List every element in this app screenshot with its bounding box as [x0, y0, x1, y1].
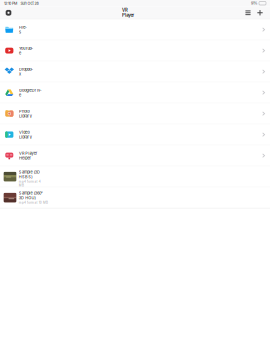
staticText: mp4 format 4 MB: [19, 180, 41, 187]
staticText: GoogleDrive: [19, 88, 41, 97]
staticText: VRPlayer Helper: [19, 151, 37, 160]
staticText: Dropbox: [19, 67, 33, 76]
button[interactable]: Photo Library: [0, 103, 270, 124]
staticText: YouTube: [19, 46, 33, 55]
staticText: 91%: [251, 1, 258, 5]
button[interactable]: Settings: [2, 7, 14, 19]
staticText: Video Library: [19, 130, 32, 139]
button[interactable]: Sample (360° 3D HOU): [0, 187, 270, 208]
button[interactable]: Files: [0, 19, 270, 40]
staticText: VR Player: [122, 8, 134, 18]
staticText: 12:10 PM: [4, 1, 17, 5]
button[interactable]: Layout options: [242, 7, 254, 19]
button[interactable]: Add: [254, 7, 266, 19]
staticText: Photo Library: [19, 109, 32, 118]
button[interactable]: Sample (3D HSBS): [0, 166, 270, 187]
button[interactable]: VRPlayer Helper: [0, 145, 270, 166]
staticText: Sun Oct 28: [20, 1, 38, 5]
button[interactable]: GoogleDrive: [0, 82, 270, 103]
staticText: Sample (3D HSBS): [19, 170, 40, 179]
button[interactable]: YouTube: [0, 40, 270, 61]
staticText: Sample (360° 3D HOU): [19, 191, 43, 200]
staticText: Files: [19, 25, 26, 34]
button[interactable]: Dropbox: [0, 61, 270, 82]
staticText: mp4 format 10 MB: [19, 201, 48, 204]
button[interactable]: Video Library: [0, 124, 270, 145]
